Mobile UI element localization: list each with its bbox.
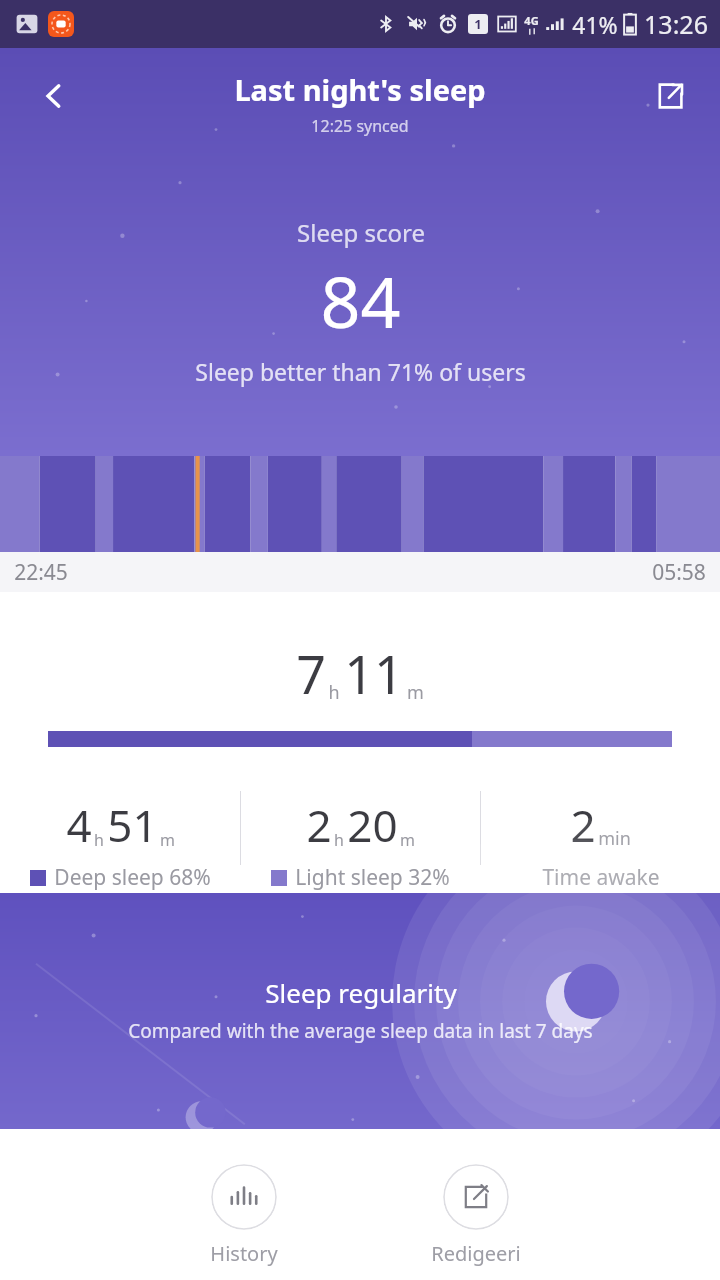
button[interactable]: 4 (0, 783, 240, 892)
staticText: 12:25 synced (311, 115, 409, 137)
button[interactable]: 2 (481, 783, 720, 892)
staticText: 7 (296, 638, 326, 709)
staticText: Sleep score (297, 216, 425, 249)
staticText: 13:26 (644, 7, 708, 41)
staticText: Time awake (542, 863, 660, 892)
staticText: Redigeeri (431, 1240, 521, 1267)
staticText: h (328, 680, 340, 705)
staticText: Deep sleep 68% (54, 863, 211, 892)
button[interactable]: Back (26, 68, 82, 124)
button[interactable]: History (169, 1146, 319, 1267)
staticText: h (94, 829, 104, 851)
staticText: min (598, 826, 631, 851)
staticText: 11 (344, 638, 404, 709)
staticText: 2 (306, 795, 332, 855)
staticText: 20 (347, 795, 398, 855)
button[interactable]: 2 (241, 783, 480, 892)
button[interactable]: Redigeeri (401, 1146, 551, 1267)
staticText: Compared with the average sleep data in … (128, 1018, 593, 1044)
staticText: Light sleep 32% (295, 863, 450, 892)
staticText: 22:45 (14, 558, 68, 587)
staticText: 4 (66, 795, 92, 855)
staticText: 84 (320, 253, 401, 348)
staticText: m (400, 829, 415, 851)
staticText: Sleep better than 71% of users (195, 356, 526, 387)
staticText: m (160, 829, 175, 851)
staticText: 51 (107, 795, 158, 855)
button[interactable]: Sleep regularity (0, 893, 720, 1129)
staticText: 2 (570, 795, 596, 855)
staticText: Last night's sleep (234, 70, 486, 109)
staticText: 1 (474, 15, 482, 33)
staticText: m (407, 680, 424, 705)
staticText: h (334, 829, 344, 851)
staticText: 4G (524, 13, 539, 28)
button[interactable]: Share (642, 68, 698, 124)
staticText: 05:58 (652, 558, 706, 587)
staticText: 41% (572, 9, 618, 40)
staticText: History (210, 1240, 278, 1267)
staticText: Sleep regularity (265, 975, 457, 1010)
